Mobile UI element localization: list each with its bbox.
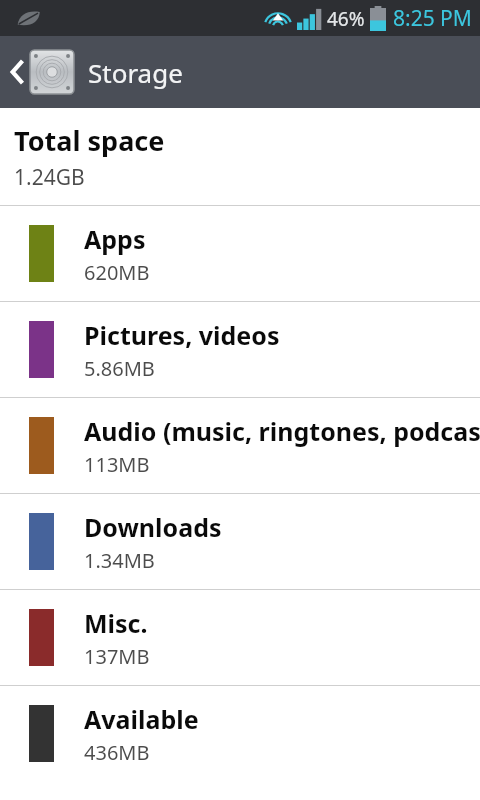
button[interactable]: Pictures, videos [0, 302, 480, 397]
staticText: 1.24GB [14, 163, 85, 192]
staticText: Apps [84, 222, 146, 256]
button[interactable]: Audio (music, ringtones, podcasts) [0, 398, 480, 493]
button[interactable]: Available [0, 686, 480, 781]
staticText: Misc. [84, 606, 148, 640]
staticText: 46% [327, 6, 365, 32]
staticText: 436MB [84, 739, 150, 766]
staticText: 620MB [84, 259, 150, 286]
staticText: Total space [14, 122, 165, 159]
staticText: Pictures, videos [84, 318, 280, 352]
staticText: 5.86MB [84, 355, 155, 382]
button[interactable]: Apps [0, 206, 480, 301]
staticText: 1.34MB [84, 547, 155, 574]
staticText: 8:25 PM [393, 4, 472, 33]
staticText: Storage [88, 55, 183, 90]
button[interactable]: Back to Settings [0, 36, 480, 108]
staticText: Downloads [84, 510, 222, 544]
button[interactable]: Misc. [0, 590, 480, 685]
staticText: 137MB [84, 643, 150, 670]
staticText: Audio (music, ringtones, podcasts) [84, 414, 480, 448]
staticText: Available [84, 702, 199, 736]
button[interactable]: Downloads [0, 494, 480, 589]
staticText: 113MB [84, 451, 150, 478]
